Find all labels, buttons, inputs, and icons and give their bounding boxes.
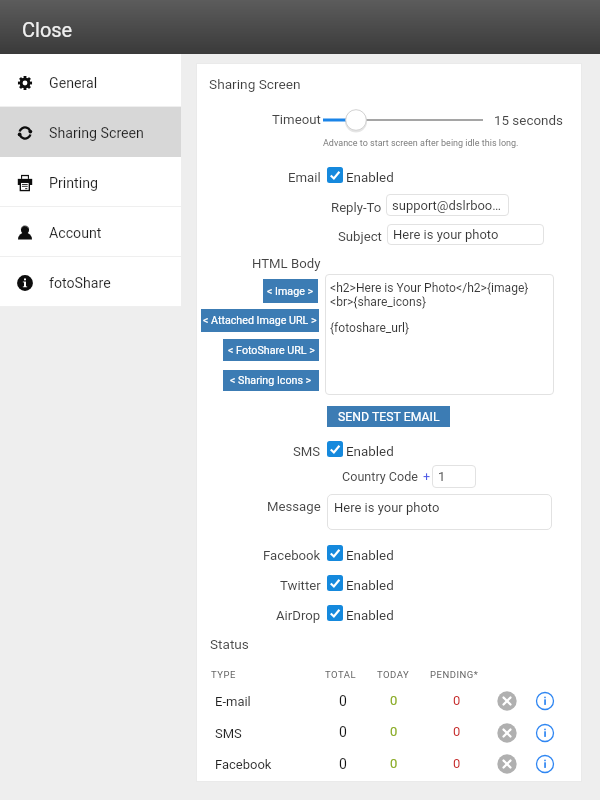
staticText: 0 [453, 693, 461, 708]
button[interactable]: Timeout slider [323, 112, 483, 128]
button[interactable]: Enabled [327, 575, 394, 591]
staticText: Close [22, 18, 73, 41]
staticText: 0 [339, 693, 347, 709]
staticText: Sharing Screen [209, 76, 301, 92]
button[interactable]: Enabled [327, 545, 394, 561]
button[interactable]: Clear [497, 723, 517, 743]
staticText: Account [49, 225, 102, 242]
staticText: Printing [49, 175, 98, 192]
button[interactable]: Enabled [327, 605, 394, 621]
button[interactable]: Info [535, 754, 555, 774]
button[interactable]: Info [535, 691, 555, 711]
staticText: Facebook [263, 548, 321, 563]
staticText: 0 [339, 756, 347, 772]
staticText: 0 [453, 756, 461, 771]
staticText: SEND TEST EMAIL [338, 410, 440, 424]
staticText: {fotoshare_url} [330, 321, 410, 335]
staticText: Email [288, 170, 321, 185]
staticText: TODAY [377, 669, 410, 680]
staticText: Enabled [346, 578, 394, 594]
staticText: SMS [215, 726, 242, 741]
staticText: Enabled [346, 608, 394, 624]
staticText: <h2>Here is Your Photo</h2>{image} [330, 281, 529, 295]
staticText: TOTAL [325, 669, 357, 680]
staticText: Status [210, 636, 249, 652]
staticText: < Attached Image URL > [203, 314, 317, 327]
staticText: HTML Body [252, 256, 321, 271]
button[interactable]: support@dslrboo… [386, 194, 509, 216]
button[interactable]: < Image > [263, 279, 318, 303]
button[interactable]: < Attached Image URL > [201, 309, 319, 332]
staticText: 0 [339, 724, 347, 740]
staticText: Subject [338, 229, 382, 244]
button[interactable]: Info [535, 723, 555, 743]
button[interactable]: Enabled [327, 441, 394, 457]
button[interactable]: General [0, 57, 181, 106]
staticText: Twitter [280, 578, 321, 593]
staticText: Advance to start screen after being idle… [323, 138, 519, 149]
staticText: Timeout [272, 112, 321, 127]
staticText: Here is your photo [334, 500, 440, 515]
button[interactable]: Clear [497, 691, 517, 711]
button[interactable]: Enabled [327, 167, 394, 183]
button[interactable]: 1 [432, 465, 476, 488]
button[interactable]: < FotoShare URL > [223, 339, 319, 361]
staticText: 15 seconds [494, 113, 563, 129]
staticText: General [49, 75, 98, 92]
staticText: < FotoShare URL > [228, 344, 315, 357]
staticText: 0 [390, 756, 398, 771]
button[interactable]: Close [14, 10, 81, 45]
staticText: 1 [438, 469, 446, 484]
staticText: Here is your photo [393, 227, 499, 242]
staticText: support@dslrboo… [392, 198, 501, 213]
staticText: AirDrop [276, 608, 321, 623]
staticText: < Image > [267, 285, 314, 298]
button[interactable]: <h2>Here is Your Photo</h2>{image} [325, 274, 554, 395]
button[interactable]: SEND TEST EMAIL [327, 406, 450, 427]
staticText: + [423, 469, 431, 484]
staticText: SMS [293, 444, 321, 459]
button[interactable]: Account [0, 207, 181, 256]
button[interactable]: Clear [497, 754, 517, 774]
staticText: Sharing Screen [49, 125, 144, 142]
staticText: Country Code [342, 469, 419, 484]
button[interactable]: Here is your photo [387, 224, 544, 245]
staticText: 0 [453, 724, 461, 739]
staticText: fotoShare [49, 275, 111, 292]
staticText: Reply-To [331, 200, 382, 215]
staticText: TYPE [211, 669, 236, 680]
staticText: Enabled [346, 170, 394, 186]
button[interactable]: Printing [0, 157, 181, 206]
staticText: < Sharing Icons > [230, 374, 312, 387]
staticText: 0 [390, 693, 398, 708]
staticText: <br>{share_icons} [330, 295, 426, 309]
staticText: Enabled [346, 444, 394, 460]
staticText: Facebook [215, 757, 272, 772]
staticText: Enabled [346, 548, 394, 564]
button[interactable]: fotoShare [0, 257, 181, 306]
staticText: E-mail [215, 694, 251, 709]
staticText: PENDING* [430, 669, 479, 680]
staticText: 0 [390, 724, 398, 739]
button[interactable]: Here is your photo [327, 494, 552, 530]
staticText: Message [267, 499, 321, 514]
button[interactable]: < Sharing Icons > [223, 370, 319, 391]
button[interactable]: Sharing Screen [0, 107, 181, 156]
